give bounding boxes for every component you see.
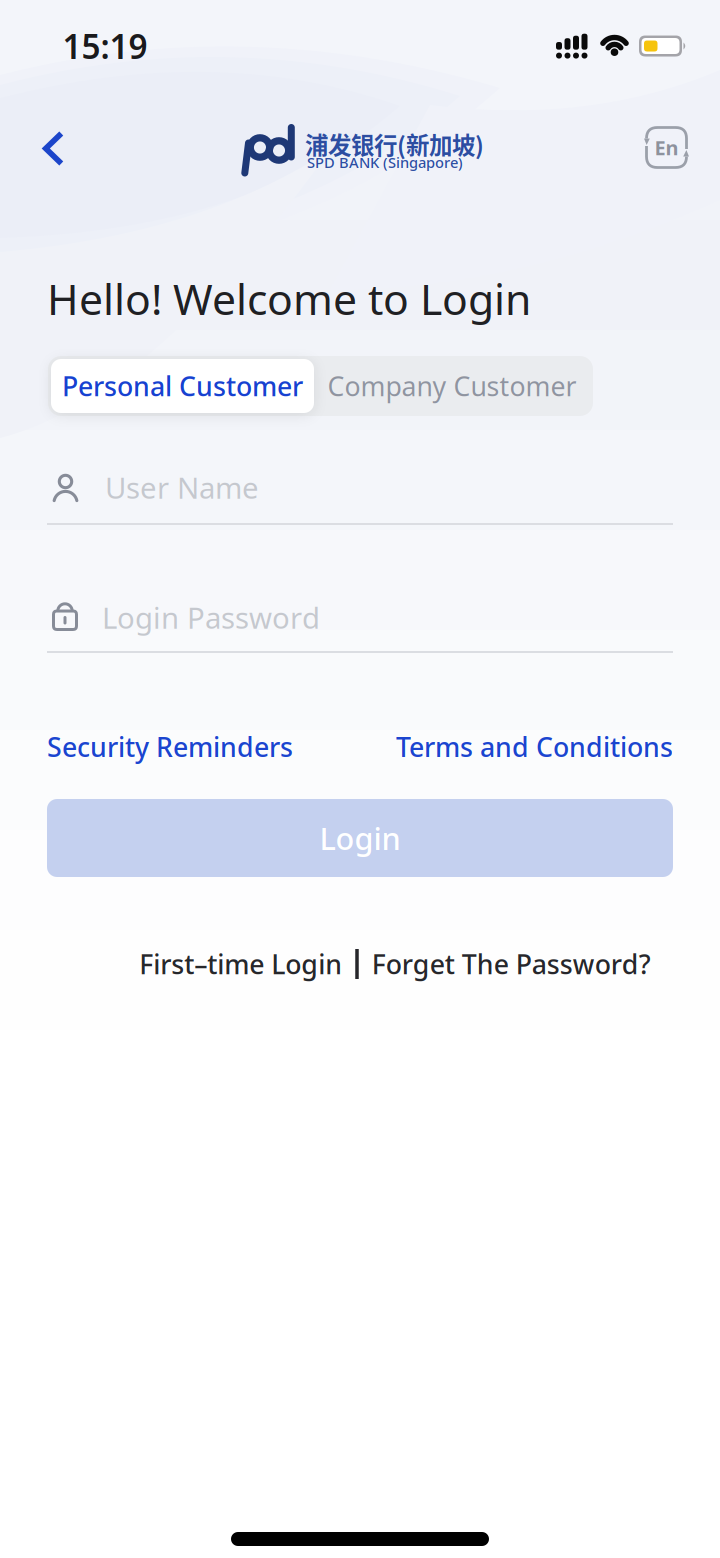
staticText: Login <box>319 818 400 858</box>
staticText: Personal Customer <box>62 368 303 404</box>
staticText: Forget The Password? <box>372 946 651 982</box>
button[interactable]: Personal Customer <box>51 359 314 413</box>
staticText: User Name <box>105 468 259 507</box>
button[interactable]: Security Reminders <box>47 729 293 764</box>
button[interactable]: Login <box>47 799 673 877</box>
button[interactable]: Login Password <box>47 590 673 654</box>
staticText: Login Password <box>102 598 320 637</box>
button[interactable]: Back <box>42 128 66 168</box>
staticText: Security Reminders <box>47 729 293 764</box>
button[interactable]: Company Customer <box>314 359 590 413</box>
button[interactable]: Terms and Conditions <box>396 729 673 764</box>
staticText: En <box>654 134 678 161</box>
staticText: Hello! Welcome to Login <box>47 270 531 327</box>
button[interactable]: First–time Login <box>139 946 342 982</box>
staticText: Company Customer <box>327 368 576 404</box>
button[interactable]: User Name <box>47 462 673 526</box>
staticText: 15:19 <box>62 24 147 68</box>
staticText: First–time Login <box>139 946 342 982</box>
staticText: SPD BANK (Singapore) <box>307 152 463 172</box>
staticText: Terms and Conditions <box>396 729 673 764</box>
staticText: 浦发银行(新加坡) <box>305 127 484 161</box>
button[interactable]: Switch Language <box>644 125 689 170</box>
button[interactable]: Forget The Password? <box>372 946 651 982</box>
